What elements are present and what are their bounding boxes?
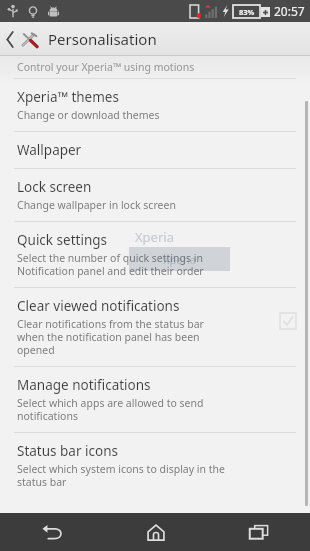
staticText: Wallpaper (17, 141, 82, 159)
button[interactable]: Clear viewed notifications toggle (278, 311, 298, 331)
staticText: Control your Xperia™ using motions (17, 60, 195, 74)
staticText: Lock screen (17, 178, 92, 196)
staticText: Select the number of quick settings in N… (17, 251, 204, 278)
button[interactable]: Clear viewed notifications (0, 288, 310, 366)
button[interactable]: Lock screen (0, 169, 310, 221)
staticText: Personalisation (48, 29, 157, 49)
staticText: Xperia™ themes (17, 88, 119, 106)
button[interactable]: Home (104, 513, 207, 551)
button[interactable]: Recent apps (207, 513, 310, 551)
staticText: Change or download themes (17, 108, 160, 122)
button[interactable]: Manage notifications (0, 367, 310, 432)
button[interactable]: Xperia™ themes (0, 79, 310, 131)
staticText: Manage notifications (17, 376, 151, 394)
button[interactable]: Back (0, 25, 165, 53)
staticText: 20:57 (274, 3, 305, 19)
staticText: Change wallpaper in lock screen (17, 198, 176, 212)
staticText: Clear viewed notifications (17, 297, 180, 315)
staticText: Xperia (163, 252, 196, 267)
staticText: Select which apps are allowed to send no… (17, 396, 204, 423)
button[interactable]: Status bar icons (0, 433, 310, 498)
button[interactable]: Quick settings (0, 222, 310, 287)
staticText: Xperia (135, 228, 174, 246)
staticText: Quick settings (17, 231, 107, 249)
staticText: Clear notifications from the status bar … (17, 317, 204, 357)
button[interactable]: Wallpaper (0, 132, 310, 168)
other: Back (6, 32, 15, 47)
staticText: Status bar icons (17, 442, 118, 460)
button[interactable]: Back (0, 513, 104, 551)
staticText: Select which system icons to display in … (17, 462, 225, 489)
button[interactable]: Control your Xperia™ using motions (0, 56, 310, 78)
staticText: 83% (239, 7, 255, 17)
